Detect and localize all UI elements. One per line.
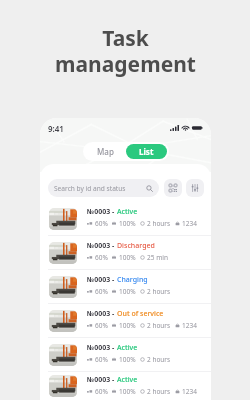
staticText: 100% bbox=[119, 321, 136, 330]
staticText: 1234 bbox=[182, 219, 197, 228]
staticText: 100% bbox=[119, 219, 136, 228]
staticText: №0003 - bbox=[87, 309, 117, 319]
button[interactable]: №0003 - bbox=[40, 236, 211, 270]
staticText: 2 hours bbox=[147, 387, 171, 396]
staticText: management bbox=[55, 50, 196, 79]
staticText: List bbox=[139, 146, 154, 157]
staticText: 100% bbox=[119, 355, 136, 364]
button[interactable]: Search by id and status bbox=[48, 179, 159, 197]
button[interactable]: Scan QR code bbox=[164, 179, 182, 197]
staticText: 25 min bbox=[147, 253, 168, 262]
button[interactable]: Map bbox=[85, 144, 126, 159]
staticText: №0003 - bbox=[87, 343, 117, 353]
button[interactable]: №0003 - bbox=[40, 372, 211, 400]
staticText: Discharged bbox=[117, 241, 155, 251]
staticText: Active bbox=[117, 207, 138, 217]
staticText: 2 hours bbox=[147, 321, 171, 330]
staticText: 60% bbox=[95, 321, 108, 330]
staticText: 60% bbox=[95, 387, 108, 396]
staticText: Map bbox=[97, 146, 114, 157]
staticText: 2 hours bbox=[147, 355, 171, 364]
staticText: 1234 bbox=[182, 321, 197, 330]
button[interactable]: №0003 - bbox=[40, 338, 211, 372]
staticText: 100% bbox=[119, 253, 136, 262]
staticText: 2 hours bbox=[147, 219, 171, 228]
staticText: 60% bbox=[95, 355, 108, 364]
button[interactable]: №0003 - bbox=[40, 304, 211, 338]
staticText: Active bbox=[117, 343, 138, 353]
button[interactable]: List bbox=[126, 144, 167, 159]
staticText: 60% bbox=[95, 219, 108, 228]
staticText: Task bbox=[102, 24, 149, 53]
button[interactable]: №0003 - bbox=[40, 202, 211, 236]
staticText: №0003 - bbox=[87, 275, 117, 285]
staticText: Search by id and status bbox=[54, 184, 126, 193]
staticText: №0003 - bbox=[87, 207, 117, 217]
button[interactable]: №0003 - bbox=[40, 270, 211, 304]
staticText: №0003 - bbox=[87, 241, 117, 251]
button[interactable]: Filter bbox=[186, 179, 204, 197]
staticText: 100% bbox=[119, 387, 136, 396]
staticText: 9:41 bbox=[48, 123, 64, 133]
staticText: 2 hours bbox=[147, 287, 171, 296]
staticText: 60% bbox=[95, 253, 108, 262]
staticText: 100% bbox=[119, 287, 136, 296]
staticText: 1234 bbox=[182, 387, 197, 396]
staticText: Charging bbox=[117, 275, 148, 285]
staticText: Out of service bbox=[117, 309, 164, 319]
staticText: 60% bbox=[95, 287, 108, 296]
staticText: №0003 - bbox=[87, 375, 117, 385]
staticText: Active bbox=[117, 375, 138, 385]
